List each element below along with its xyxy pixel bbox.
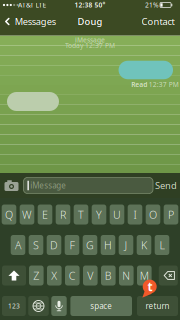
button[interactable]: space xyxy=(70,296,132,316)
staticText: Y xyxy=(96,207,102,222)
staticText: return xyxy=(145,301,169,311)
staticText: P xyxy=(168,207,174,222)
button[interactable]: W xyxy=(20,204,34,224)
staticText: Today 12:37 PM xyxy=(65,41,115,50)
button[interactable]: V xyxy=(83,265,98,285)
staticText: T xyxy=(78,207,84,222)
staticText: F xyxy=(69,238,74,252)
staticText: Q xyxy=(5,207,13,222)
button[interactable]: Message field xyxy=(23,177,153,193)
button[interactable]: P xyxy=(164,204,178,224)
button[interactable]: Send xyxy=(153,178,179,192)
staticText: Read xyxy=(131,80,147,89)
staticText: 21% xyxy=(145,1,159,9)
button[interactable]: G xyxy=(83,235,97,255)
button[interactable]: I xyxy=(128,204,142,224)
button[interactable]: Y xyxy=(92,204,106,224)
button[interactable]: Q xyxy=(2,204,16,224)
button[interactable]: Z xyxy=(29,265,44,285)
button[interactable]: K xyxy=(137,235,151,255)
button[interactable]: R xyxy=(56,204,70,224)
button[interactable]: J xyxy=(119,235,133,255)
staticText: LTE xyxy=(35,1,46,9)
staticText: Messages xyxy=(15,15,56,28)
staticText: A xyxy=(15,238,21,252)
staticText: Z xyxy=(33,268,39,283)
staticText: J xyxy=(124,238,127,252)
staticText: space xyxy=(90,301,112,311)
button[interactable]: N xyxy=(119,265,134,285)
staticText: X xyxy=(51,268,57,283)
button[interactable]: Next keyboard xyxy=(28,296,49,316)
button[interactable]: U xyxy=(110,204,124,224)
staticText: Send xyxy=(155,179,177,192)
button[interactable]: return xyxy=(137,296,178,316)
button[interactable]: Dictate xyxy=(51,296,67,316)
button[interactable]: B xyxy=(101,265,116,285)
button[interactable]: L xyxy=(155,235,169,255)
staticText: W xyxy=(22,207,32,222)
button[interactable]: H xyxy=(101,235,115,255)
staticText: U xyxy=(113,207,121,222)
button[interactable]: A xyxy=(11,235,25,255)
button[interactable]: E xyxy=(38,204,52,224)
button[interactable]: F xyxy=(65,235,79,255)
button[interactable]: Shift xyxy=(2,265,26,285)
button[interactable]: D xyxy=(47,235,61,255)
button[interactable]: Delete xyxy=(159,265,178,285)
button[interactable]: C xyxy=(65,265,80,285)
staticText: B xyxy=(105,268,112,283)
staticText: I xyxy=(133,207,136,222)
staticText: 12:38 50° xyxy=(74,1,105,9)
staticText: H xyxy=(104,238,112,252)
button[interactable]: Contact xyxy=(140,13,176,29)
staticText: t xyxy=(147,278,152,294)
staticText: E xyxy=(42,207,48,222)
button[interactable]: O xyxy=(146,204,160,224)
button[interactable]: S xyxy=(29,235,43,255)
button[interactable]: 123 xyxy=(2,296,26,316)
staticText: R xyxy=(60,207,66,222)
staticText: G xyxy=(86,238,94,252)
staticText: L xyxy=(159,238,164,252)
staticText: K xyxy=(141,238,147,252)
staticText: 123 xyxy=(8,302,20,310)
staticText: C xyxy=(69,268,76,283)
button[interactable]: M xyxy=(137,265,152,285)
button[interactable]: Back xyxy=(2,13,56,29)
staticText: D xyxy=(50,238,58,252)
staticText: V xyxy=(87,268,93,283)
staticText: 12:37 PM xyxy=(149,80,179,89)
staticText: AT&T xyxy=(18,1,34,9)
staticText: S xyxy=(33,238,39,252)
staticText: O xyxy=(149,207,157,222)
staticText: iMessage xyxy=(75,36,105,44)
button[interactable]: Camera xyxy=(3,177,20,192)
staticText: iMessage xyxy=(30,180,66,191)
staticText: Contact xyxy=(141,15,174,28)
staticText: Doug xyxy=(77,15,102,28)
button[interactable]: X xyxy=(47,265,62,285)
button[interactable]: T xyxy=(74,204,88,224)
staticText: N xyxy=(122,268,130,283)
staticText: M xyxy=(140,268,149,283)
